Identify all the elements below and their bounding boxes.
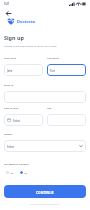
staticText: Gender xyxy=(4,132,13,135)
staticText: John xyxy=(7,69,13,72)
staticText: Sign up xyxy=(4,34,24,41)
button[interactable]: Yes xyxy=(6,171,14,174)
staticText: CONTINUE xyxy=(36,190,54,194)
staticText: Yes xyxy=(10,171,14,174)
staticText: Text xyxy=(50,69,55,72)
button[interactable]: CONTINUE xyxy=(4,185,86,198)
button[interactable]: John xyxy=(4,64,43,76)
staticText: Select xyxy=(13,119,21,122)
staticText: Email ID xyxy=(4,83,14,86)
button[interactable]: Select xyxy=(4,140,86,152)
staticText: Age xyxy=(47,106,52,109)
button[interactable]: No xyxy=(20,171,28,174)
staticText: Date of birth xyxy=(4,106,19,109)
staticText: No xyxy=(24,171,28,174)
button[interactable]: Back xyxy=(3,8,13,18)
button[interactable]: Text xyxy=(47,64,86,76)
staticText: Last name xyxy=(47,56,59,59)
button[interactable] xyxy=(4,91,86,103)
staticText: Provide some information to setup your p… xyxy=(4,44,57,47)
button[interactable]: Select xyxy=(4,114,43,126)
staticText: First name xyxy=(4,56,17,59)
staticText: ANY MEDICAL HISTORY? xyxy=(4,163,30,166)
button[interactable] xyxy=(47,114,86,126)
staticText: 9:41 xyxy=(4,2,10,6)
staticText: Select xyxy=(7,145,15,148)
staticText: Doctorex xyxy=(17,19,36,24)
